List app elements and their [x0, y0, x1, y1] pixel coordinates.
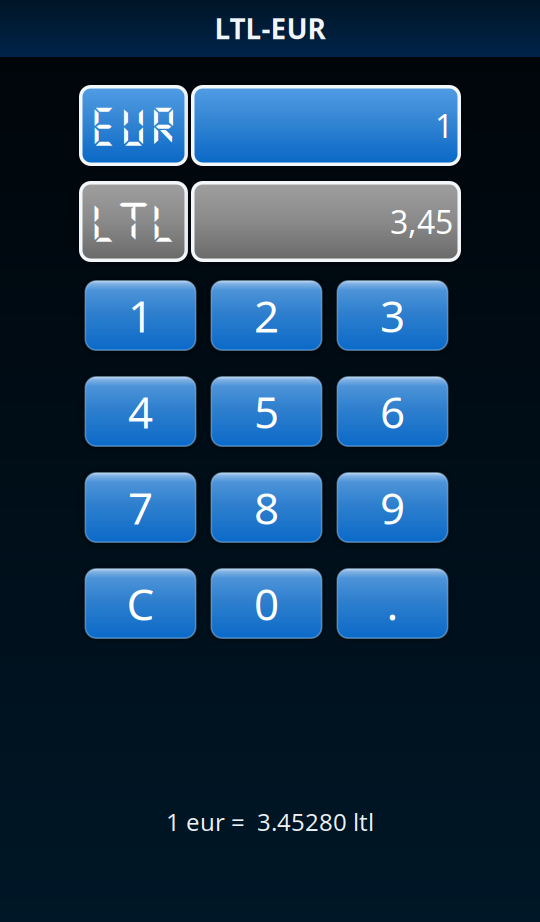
staticText: 1 — [435, 104, 453, 147]
staticText: 3,45 — [390, 200, 453, 243]
button[interactable]: LTL — [79, 181, 188, 262]
button[interactable]: C — [84, 568, 196, 639]
staticText: 1 — [128, 285, 153, 345]
staticText: 5 — [254, 381, 279, 441]
staticText: LTL-EUR — [214, 9, 325, 47]
staticText: 9 — [380, 477, 405, 537]
staticText: EUR — [88, 101, 178, 150]
button[interactable]: 1 — [191, 85, 461, 166]
button[interactable]: 6 — [336, 376, 448, 447]
staticText: C — [126, 573, 154, 633]
staticText: 1 eur = 3.45280 ltl — [166, 805, 374, 838]
staticText: 6 — [380, 381, 405, 441]
staticText: 2 — [254, 285, 279, 345]
button[interactable]: 3 — [336, 280, 448, 351]
button[interactable]: 4 — [84, 376, 196, 447]
button[interactable]: 2 — [210, 280, 322, 351]
button[interactable]: 0 — [210, 568, 322, 639]
button[interactable]: 1 — [84, 280, 196, 351]
staticText: 4 — [128, 381, 153, 441]
staticText: . — [386, 573, 398, 633]
staticText: LTL — [88, 197, 178, 246]
button[interactable]: 7 — [84, 472, 196, 543]
staticText: 7 — [128, 477, 153, 537]
button[interactable]: . — [336, 568, 448, 639]
button[interactable]: 3,45 — [191, 181, 461, 262]
button[interactable]: 5 — [210, 376, 322, 447]
staticText: 0 — [254, 573, 279, 633]
button[interactable]: EUR — [79, 85, 188, 166]
button[interactable]: 8 — [210, 472, 322, 543]
staticText: 8 — [254, 477, 279, 537]
button[interactable]: 9 — [336, 472, 448, 543]
staticText: 3 — [380, 285, 405, 345]
